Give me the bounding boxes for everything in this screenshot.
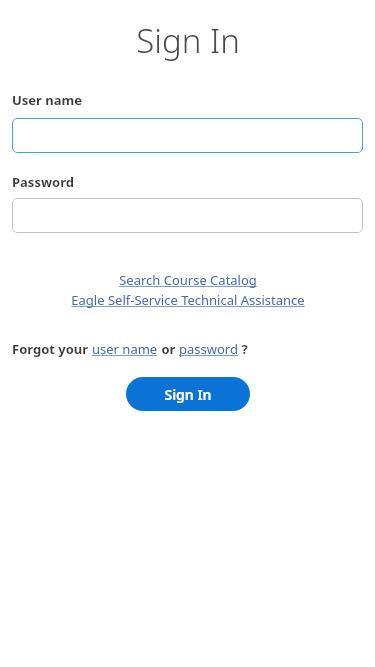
staticText: Password — [12, 173, 74, 191]
staticText: user name — [92, 340, 158, 358]
button[interactable]: password — [179, 340, 238, 358]
button[interactable]: User name input field — [12, 118, 363, 153]
staticText: ? — [238, 340, 248, 358]
staticText: Eagle Self-Service Technical Assistance — [71, 291, 305, 309]
staticText: Search Course Catalog — [119, 271, 257, 289]
staticText: Sign In — [136, 18, 240, 63]
button[interactable]: Sign In — [126, 377, 250, 411]
button[interactable]: user name — [92, 340, 158, 358]
button[interactable]: Password input field — [12, 198, 363, 233]
staticText: User name — [12, 91, 82, 109]
staticText: password — [179, 340, 238, 358]
button[interactable]: Search Course Catalog — [0, 271, 375, 289]
staticText: or — [158, 340, 179, 358]
button[interactable]: Eagle Self-Service Technical Assistance — [0, 291, 375, 309]
staticText: Forgot your — [12, 340, 92, 358]
staticText: Sign In — [164, 385, 212, 404]
